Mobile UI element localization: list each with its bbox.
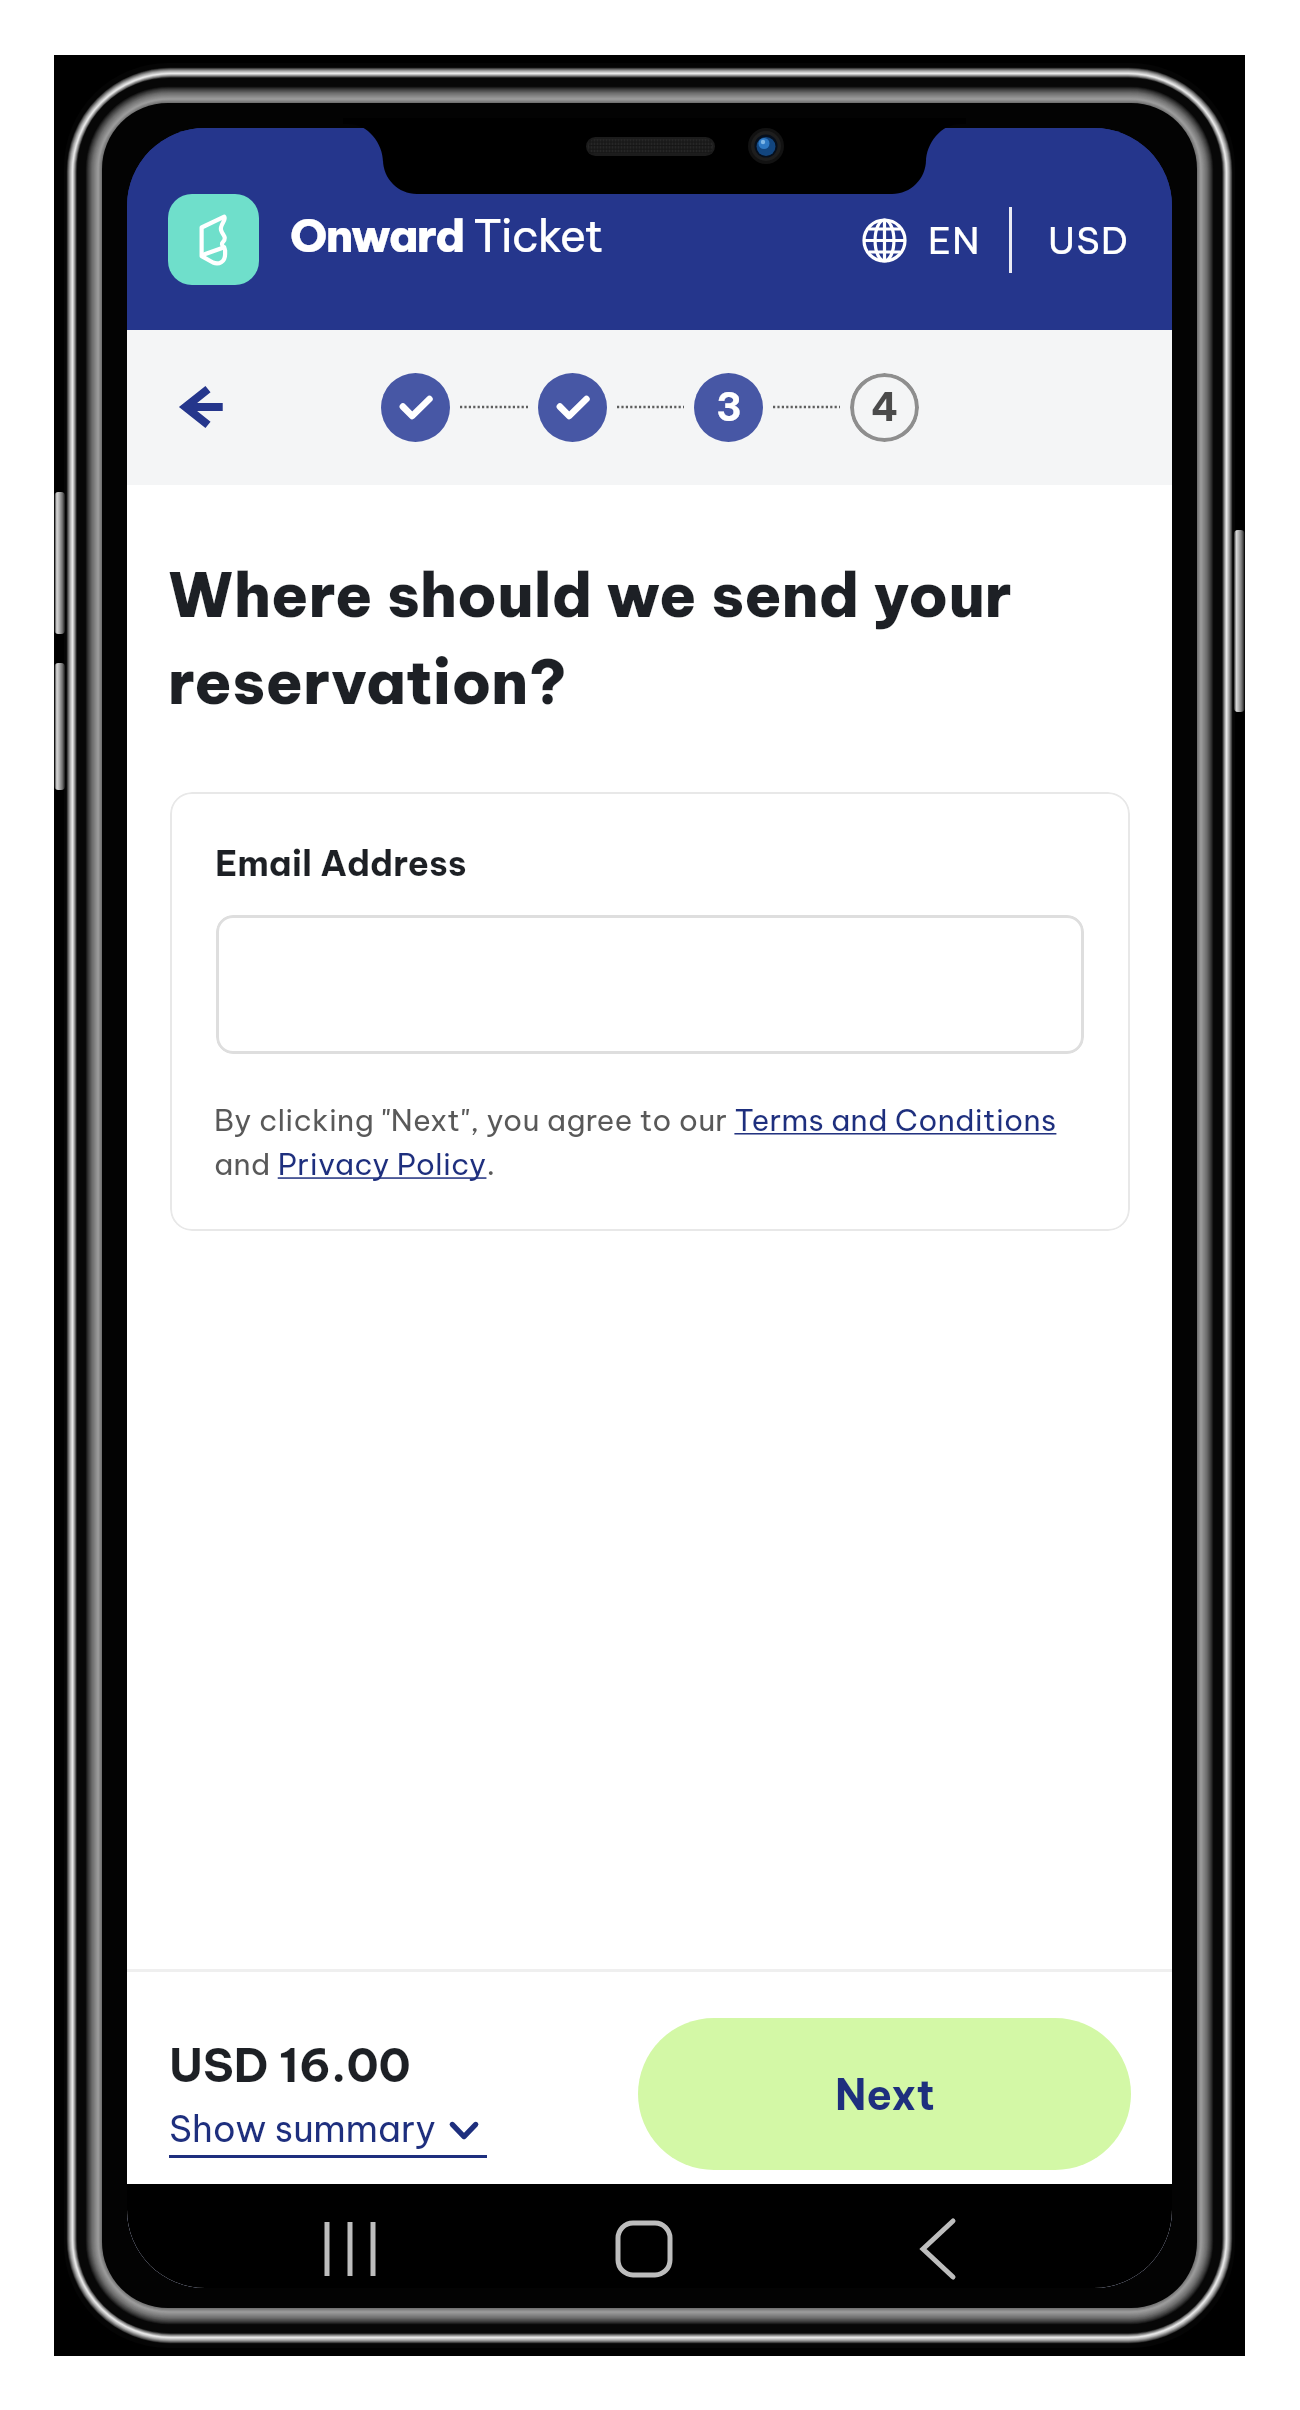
staticText: USD bbox=[1048, 217, 1130, 264]
button[interactable]: Next bbox=[638, 2018, 1131, 2170]
staticText: Email Address bbox=[215, 841, 467, 885]
staticText: Where should we send your reservation? bbox=[168, 556, 1012, 720]
staticText: Show summary bbox=[169, 2106, 437, 2152]
button[interactable]: Completed step bbox=[538, 373, 607, 442]
staticText: Next bbox=[835, 2068, 935, 2121]
button[interactable]: Step 4 bbox=[850, 373, 919, 442]
staticText: USD 16.00 bbox=[169, 2036, 411, 2094]
staticText: 4 bbox=[871, 383, 899, 431]
button[interactable]: Show summary bbox=[165, 2100, 491, 2162]
button[interactable]: Change language, currently EN bbox=[862, 212, 981, 268]
button[interactable]: Onward Ticket home bbox=[168, 194, 259, 285]
staticText: By clicking "Next", you agree to our Ter… bbox=[214, 1101, 1094, 1183]
staticText: Onward Ticket bbox=[290, 207, 603, 264]
button[interactable]: USD bbox=[1039, 212, 1139, 268]
button[interactable]: Step 3 bbox=[694, 373, 763, 442]
button[interactable]: Email Address field bbox=[216, 915, 1084, 1054]
staticText: EN bbox=[928, 217, 981, 264]
staticText: 3 bbox=[716, 383, 742, 431]
button[interactable]: Back bbox=[157, 361, 249, 453]
button[interactable]: Completed step bbox=[381, 373, 450, 442]
